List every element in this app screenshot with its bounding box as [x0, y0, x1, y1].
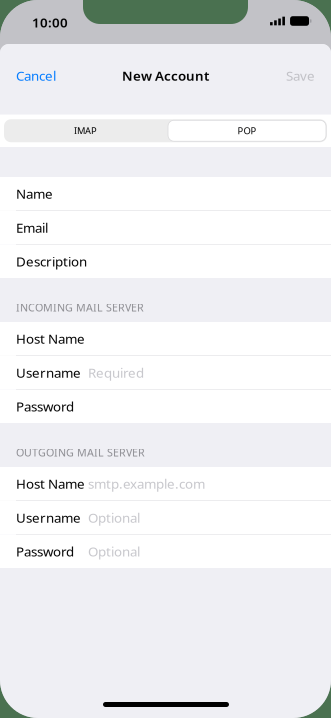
staticText: Optional [88, 509, 140, 526]
staticText: Description [16, 252, 87, 270]
staticText: Save [286, 67, 315, 84]
button[interactable]: Username [0, 356, 331, 389]
staticText: Password [16, 542, 74, 560]
button[interactable]: Password [0, 390, 331, 423]
button[interactable]: Password [0, 535, 331, 568]
staticText: Email [16, 219, 48, 236]
staticText: Username [16, 364, 81, 381]
staticText: New Account [122, 67, 209, 84]
staticText: Name [16, 185, 53, 202]
staticText: 10:00 [32, 13, 68, 31]
button[interactable]: Cancel [0, 58, 86, 92]
button[interactable]: IMAP [4, 119, 167, 142]
staticText: Host Name [16, 330, 85, 347]
staticText: INCOMING MAIL SERVER [16, 300, 144, 314]
staticText: smtp.example.com [88, 475, 205, 492]
button[interactable]: Host Name [0, 467, 331, 500]
button[interactable]: POP [167, 119, 327, 142]
button[interactable]: Name [0, 177, 331, 210]
button[interactable]: Username [0, 501, 331, 534]
staticText: IMAP [74, 125, 97, 137]
staticText: POP [237, 125, 256, 137]
staticText: Required [88, 364, 144, 381]
button[interactable]: Email [0, 211, 331, 244]
staticText: Host Name [16, 475, 85, 492]
staticText: Username [16, 509, 81, 526]
staticText: Optional [88, 542, 140, 560]
staticText: OUTGOING MAIL SERVER [16, 445, 145, 459]
button[interactable]: Host Name [0, 322, 331, 355]
staticText: Cancel [16, 67, 56, 84]
staticText: Password [16, 397, 74, 415]
button[interactable]: Save [261, 58, 331, 92]
button[interactable]: Description [0, 245, 331, 278]
